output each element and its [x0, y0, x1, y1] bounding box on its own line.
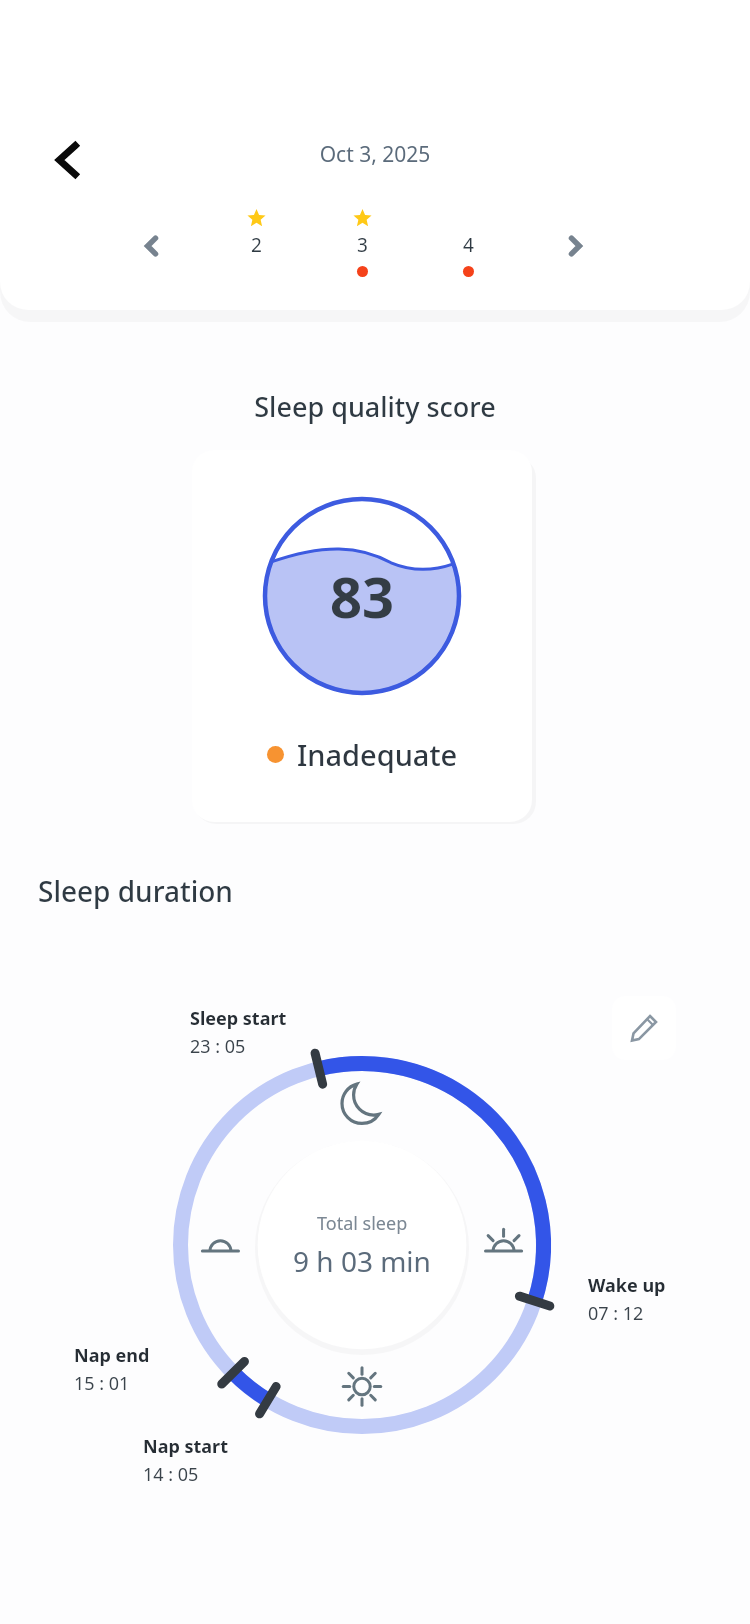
staticText: 9 h 03 min [293, 1242, 431, 1280]
staticText: 3 [357, 232, 368, 258]
staticText: Wake up [588, 1273, 666, 1298]
staticText: 23 : 05 [190, 1034, 246, 1059]
button[interactable]: 4 [438, 198, 498, 294]
button[interactable]: 2 [226, 198, 286, 294]
staticText: Total sleep [317, 1211, 408, 1236]
staticText: Inadequate [297, 735, 458, 774]
staticText: 14 : 05 [143, 1462, 199, 1487]
staticText: 83 [330, 558, 395, 634]
staticText: Sleep start [190, 1006, 287, 1031]
staticText: 2 [251, 232, 262, 258]
staticText: 4 [463, 232, 474, 258]
staticText: 07 : 12 [588, 1301, 644, 1326]
staticText: Sleep duration [38, 872, 233, 910]
staticText: Oct 3, 2025 [0, 140, 750, 169]
button[interactable]: 3 [332, 198, 392, 294]
button[interactable]: Back [36, 128, 100, 192]
button[interactable]: Edit [612, 996, 676, 1060]
button[interactable]: Previous day [121, 215, 182, 276]
staticText: Nap end [74, 1343, 150, 1368]
button[interactable]: 83 [192, 450, 532, 822]
staticText: Sleep quality score [0, 388, 750, 425]
staticText: 15 : 01 [74, 1371, 130, 1396]
staticText: Nap start [143, 1434, 228, 1459]
button[interactable]: Next day [544, 215, 605, 276]
